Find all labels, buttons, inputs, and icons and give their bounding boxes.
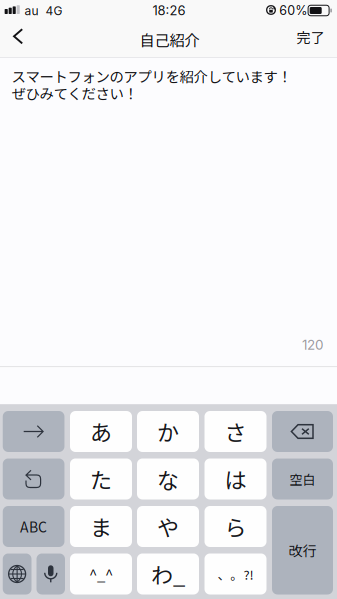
button[interactable]: ら	[204, 506, 266, 547]
staticText: 、。?!	[217, 565, 253, 583]
staticText: ABC	[20, 516, 47, 537]
staticText: au	[24, 4, 38, 18]
staticText: や	[157, 511, 179, 542]
staticText: 18:26	[152, 3, 185, 18]
button[interactable]: た	[70, 458, 132, 499]
staticText: 自己紹介	[139, 28, 199, 50]
button[interactable]: Switch keyboard	[3, 553, 32, 594]
staticText: 空白	[289, 470, 315, 488]
button[interactable]: 空白	[272, 458, 333, 499]
staticText: は	[224, 463, 246, 495]
staticText: さ	[224, 416, 246, 447]
staticText: ^_^	[89, 563, 113, 585]
button[interactable]: 改行	[272, 506, 333, 594]
button[interactable]: か	[137, 411, 199, 452]
button[interactable]: Back	[0, 16, 38, 56]
staticText: スマートフォンのアプリを紹介しています！	[11, 65, 291, 86]
staticText: ま	[90, 511, 112, 542]
button[interactable]: な	[137, 458, 199, 499]
staticText: 完了	[296, 27, 324, 47]
button[interactable]: Undo	[3, 458, 64, 499]
staticText: 4G	[45, 4, 62, 18]
button[interactable]: や	[137, 506, 199, 547]
button[interactable]: わ_	[137, 553, 199, 594]
button[interactable]: 完了	[285, 18, 335, 56]
staticText: あ	[90, 416, 112, 447]
button[interactable]: さ	[204, 411, 266, 452]
button[interactable]: 、。?!	[204, 553, 266, 594]
button[interactable]: ま	[70, 506, 132, 547]
button[interactable]: Delete	[272, 411, 333, 452]
staticText: な	[157, 463, 179, 495]
staticText: わ_	[151, 558, 185, 590]
staticText: ぜひみてください！	[11, 82, 137, 103]
button[interactable]: Next candidate	[3, 411, 64, 452]
button[interactable]: Dictate	[36, 553, 65, 594]
staticText: 60%	[279, 3, 307, 18]
staticText: 改行	[288, 540, 316, 560]
staticText: 120	[302, 337, 324, 353]
staticText: か	[157, 416, 179, 447]
button[interactable]: は	[204, 458, 266, 499]
staticText: ら	[224, 511, 246, 542]
staticText: た	[90, 463, 112, 495]
button[interactable]: あ	[70, 411, 132, 452]
button[interactable]: ABC	[3, 506, 64, 547]
button[interactable]: ^_^	[70, 553, 132, 594]
